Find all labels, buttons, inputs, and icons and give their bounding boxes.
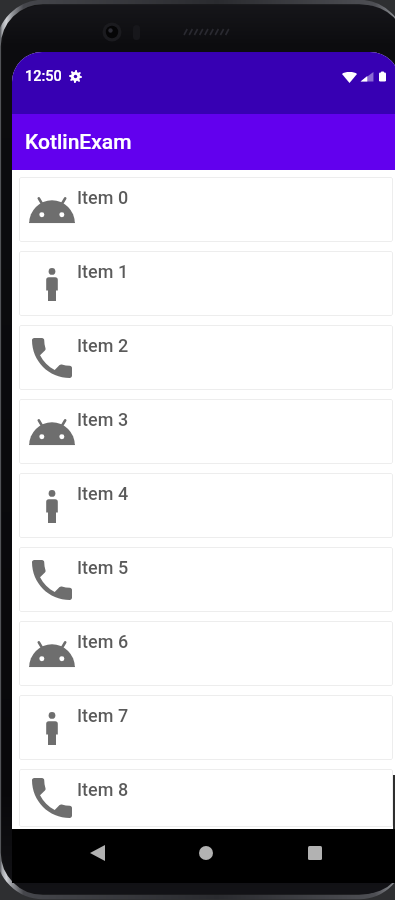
staticText: Item 7 — [77, 705, 129, 726]
button[interactable]: Item 7 — [19, 695, 393, 760]
staticText: KotlinExam — [25, 130, 132, 155]
staticText: Item 8 — [77, 779, 129, 800]
button[interactable]: Item 4 — [19, 473, 393, 538]
button[interactable]: Item 6 — [19, 621, 393, 686]
button[interactable]: Item 5 — [19, 547, 393, 612]
staticText: Item 4 — [77, 483, 129, 504]
button[interactable]: Home — [182, 829, 230, 877]
staticText: Item 0 — [77, 187, 129, 208]
staticText: Item 3 — [77, 409, 129, 430]
button[interactable]: Item 3 — [19, 399, 393, 464]
button[interactable]: Item 2 — [19, 325, 393, 390]
button[interactable]: Item 8 — [19, 769, 393, 827]
button[interactable]: Item 0 — [19, 177, 393, 242]
button[interactable]: Recent apps — [291, 829, 339, 877]
staticText: Item 1 — [77, 261, 129, 282]
staticText: Item 6 — [77, 631, 129, 652]
staticText: 12:50 — [25, 68, 62, 85]
staticText: Item 2 — [77, 335, 129, 356]
staticText: Item 5 — [77, 557, 129, 578]
button[interactable]: Item 1 — [19, 251, 393, 316]
button[interactable]: Back — [73, 829, 121, 877]
